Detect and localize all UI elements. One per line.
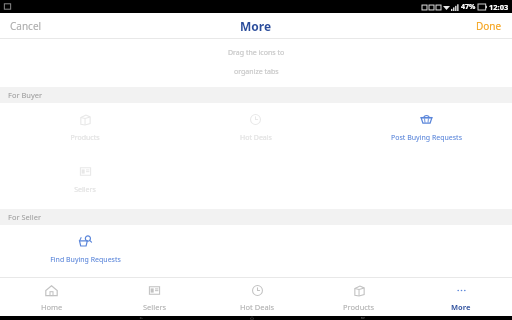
staticText: Products xyxy=(343,302,375,312)
staticText: Post Buying Requests xyxy=(391,133,462,143)
button[interactable]: Recents xyxy=(332,316,401,320)
staticText: Sellers xyxy=(74,185,96,195)
staticText: Sellers xyxy=(143,302,167,312)
button[interactable]: Back xyxy=(110,316,179,320)
staticText: 12:03 xyxy=(489,2,509,12)
staticText: Find Buying Requests xyxy=(50,255,121,265)
staticText: Done xyxy=(476,19,502,33)
staticText: Products xyxy=(70,133,100,143)
staticText: Drag the icons to xyxy=(228,48,285,58)
button[interactable]: More xyxy=(410,278,512,316)
button[interactable]: Post Buying Requests xyxy=(341,103,512,155)
button[interactable]: Done xyxy=(466,15,512,37)
button[interactable]: Home xyxy=(221,316,290,320)
staticText: Hot Deals xyxy=(240,133,272,143)
staticText: Cancel xyxy=(10,19,42,33)
staticText: Hot Deals xyxy=(240,302,275,312)
staticText: 47% xyxy=(461,2,476,12)
staticText: More xyxy=(240,18,272,34)
button[interactable]: Home xyxy=(0,278,103,316)
staticText: For Buyer xyxy=(8,90,43,100)
staticText: organize tabs xyxy=(234,67,279,77)
button[interactable]: Sellers xyxy=(103,278,206,316)
button[interactable]: Cancel xyxy=(0,15,52,37)
button[interactable]: Products xyxy=(308,278,410,316)
button[interactable]: Find Buying Requests xyxy=(0,225,170,277)
button[interactable]: Hot Deals xyxy=(206,278,308,316)
staticText: For Seller xyxy=(8,212,42,222)
staticText: More xyxy=(451,302,471,312)
staticText: Home xyxy=(41,302,63,312)
